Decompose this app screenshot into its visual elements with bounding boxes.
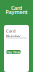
button[interactable]: Pay Now	[6, 50, 21, 54]
staticText: Card	[11, 4, 22, 12]
staticText: Pay Now	[6, 49, 21, 55]
staticText: Card Number	[6, 28, 21, 39]
staticText: Payment	[5, 8, 27, 16]
